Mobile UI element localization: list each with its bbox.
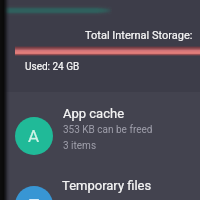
button[interactable]: Total Internal Storage:	[0, 0, 200, 92]
staticText: T	[29, 195, 40, 200]
staticText: Total Internal Storage:	[85, 29, 193, 42]
button[interactable]: A	[0, 96, 200, 168]
staticText: 353 KB can be freed	[63, 124, 153, 136]
staticText: App cache	[63, 106, 125, 121]
staticText: Used: 24 GB	[25, 61, 80, 73]
staticText: 3 items	[63, 140, 97, 152]
staticText: A	[28, 126, 40, 146]
staticText: Temporary files	[62, 178, 152, 193]
button[interactable]: T	[0, 168, 200, 200]
